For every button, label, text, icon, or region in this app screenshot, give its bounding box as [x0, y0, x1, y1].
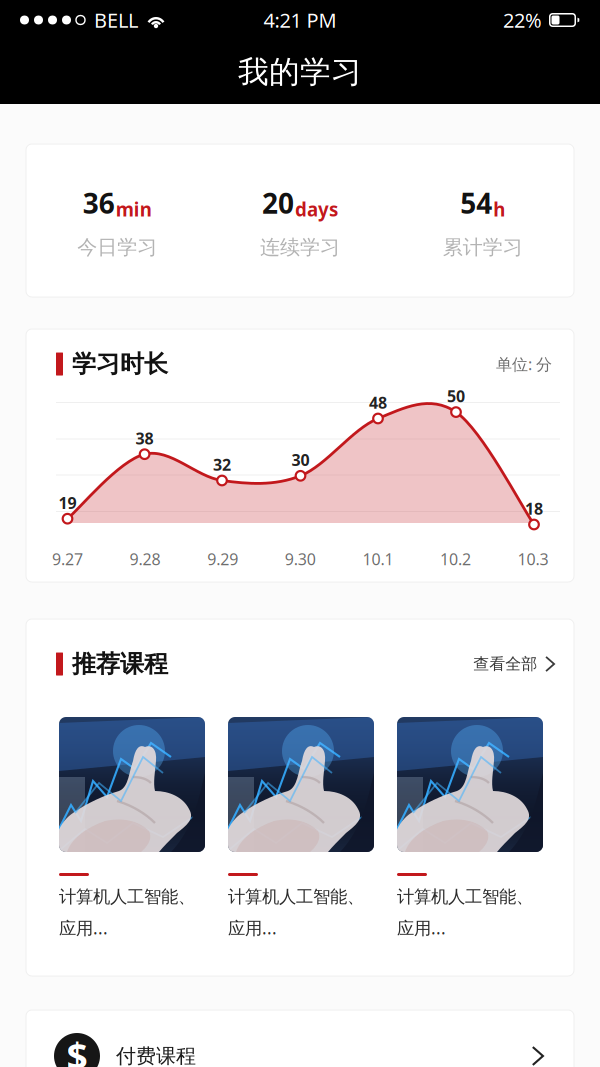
staticText: 应用...: [59, 916, 108, 939]
staticText: 10.2: [440, 548, 471, 570]
staticText: 累计学习: [443, 235, 523, 260]
staticText: min: [116, 197, 152, 222]
staticText: 36: [83, 184, 115, 222]
staticText: days: [295, 197, 338, 222]
staticText: 今日学习: [77, 235, 157, 260]
button[interactable]: 查看全部: [473, 654, 555, 674]
staticText: 22%: [503, 7, 542, 33]
staticText: 30: [291, 449, 309, 470]
staticText: 10.1: [362, 548, 393, 570]
staticText: 应用...: [228, 916, 277, 939]
staticText: 18: [525, 498, 543, 519]
button[interactable]: 计算机人工智能、: [59, 717, 205, 940]
staticText: BELL: [94, 7, 138, 33]
staticText: 学习时长: [72, 349, 168, 379]
staticText: 计算机人工智能、: [228, 886, 364, 907]
button[interactable]: 计算机人工智能、: [228, 717, 374, 940]
staticText: h: [493, 197, 505, 222]
staticText: 48: [369, 392, 387, 413]
button[interactable]: 计算机人工智能、: [397, 717, 543, 940]
staticText: 应用...: [397, 916, 446, 939]
staticText: 54: [460, 184, 492, 222]
staticText: 推荐课程: [72, 649, 168, 679]
staticText: 我的学习: [238, 53, 362, 91]
staticText: 单位: 分: [496, 353, 552, 375]
staticText: 10.3: [518, 548, 549, 570]
staticText: 9.30: [285, 548, 316, 570]
staticText: 9.27: [52, 548, 83, 570]
staticText: 9.28: [130, 548, 161, 570]
staticText: 查看全部: [473, 654, 537, 674]
staticText: 计算机人工智能、: [397, 886, 533, 907]
staticText: $: [66, 1031, 87, 1067]
staticText: 50: [447, 385, 465, 407]
staticText: 计算机人工智能、: [59, 886, 195, 907]
staticText: 32: [213, 454, 231, 475]
staticText: 付费课程: [116, 1044, 196, 1067]
staticText: 20: [262, 184, 294, 222]
staticText: 19: [58, 492, 76, 513]
staticText: 9.29: [207, 548, 238, 570]
staticText: 38: [136, 428, 154, 449]
button[interactable]: $: [26, 1010, 574, 1067]
staticText: 连续学习: [260, 235, 340, 260]
staticText: 4:21 PM: [263, 7, 336, 33]
